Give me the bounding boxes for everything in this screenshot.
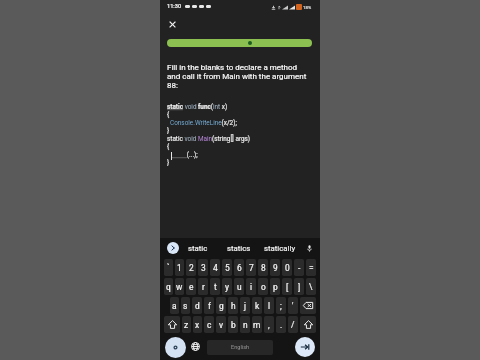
- button[interactable]: 1: [175, 259, 184, 276]
- button[interactable]: ]: [294, 278, 304, 295]
- button[interactable]: u: [234, 278, 244, 295]
- button[interactable]: p: [270, 278, 280, 295]
- button[interactable]: z: [182, 316, 191, 333]
- staticText: ;: [280, 301, 282, 311]
- button[interactable]: 9: [270, 259, 280, 276]
- staticText: 7: [249, 263, 254, 273]
- staticText: static void Main(string[] args): [167, 135, 251, 143]
- staticText: ': [292, 301, 294, 311]
- button[interactable]: Enter: [295, 337, 315, 357]
- button[interactable]: 4: [210, 259, 220, 276]
- button[interactable]: English: [207, 340, 273, 355]
- button[interactable]: Shift: [164, 316, 180, 333]
- staticText: s: [183, 301, 188, 311]
- button[interactable]: ': [288, 297, 298, 314]
- button[interactable]: \: [306, 278, 316, 295]
- button[interactable]: Emoji: [165, 337, 186, 358]
- button[interactable]: m: [252, 316, 262, 333]
- button[interactable]: static: [178, 238, 218, 258]
- staticText: (...);: [171, 151, 198, 159]
- button[interactable]: s: [181, 297, 190, 314]
- staticText: Console.WriteLine(x/2);: [170, 119, 237, 127]
- staticText: static: [188, 244, 208, 253]
- staticText: 0: [285, 263, 290, 273]
- staticText: 6: [237, 263, 242, 273]
- button[interactable]: Change language: [189, 340, 202, 353]
- button[interactable]: v: [216, 316, 226, 333]
- button[interactable]: h: [228, 297, 238, 314]
- button[interactable]: Backspace: [300, 297, 316, 314]
- button[interactable]: -: [294, 259, 304, 276]
- staticText: [: [286, 282, 289, 292]
- button[interactable]: b: [228, 316, 238, 333]
- staticText: 9: [273, 263, 278, 273]
- button[interactable]: d: [192, 297, 202, 314]
- button[interactable]: =: [306, 259, 316, 276]
- staticText: q: [166, 282, 171, 292]
- button[interactable]: t: [210, 278, 220, 295]
- button[interactable]: f: [204, 297, 214, 314]
- button[interactable]: c: [204, 316, 214, 333]
- button[interactable]: q: [164, 278, 173, 295]
- button[interactable]: j: [240, 297, 250, 314]
- button[interactable]: y: [222, 278, 232, 295]
- button[interactable]: 7: [246, 259, 256, 276]
- staticText: statics: [227, 244, 251, 253]
- button[interactable]: `: [164, 259, 173, 276]
- button[interactable]: /: [288, 316, 298, 333]
- button[interactable]: n: [240, 316, 250, 333]
- staticText: p: [273, 282, 278, 292]
- button[interactable]: 6: [234, 259, 244, 276]
- button[interactable]: k: [252, 297, 262, 314]
- button[interactable]: i: [246, 278, 256, 295]
- staticText: v: [219, 320, 224, 330]
- staticText: {: [167, 143, 170, 151]
- staticText: f: [208, 301, 211, 311]
- staticText: .: [280, 320, 283, 330]
- staticText: }: [167, 159, 170, 167]
- button[interactable]: 3: [198, 259, 208, 276]
- button[interactable]: Close: [166, 18, 178, 30]
- button[interactable]: .: [276, 316, 286, 333]
- staticText: w: [176, 282, 183, 292]
- staticText: static void func(int x): [167, 103, 228, 111]
- staticText: 18%: [303, 5, 312, 10]
- button[interactable]: [: [282, 278, 292, 295]
- button[interactable]: e: [186, 278, 196, 295]
- staticText: ]: [298, 282, 301, 292]
- button[interactable]: r: [198, 278, 208, 295]
- staticText: i: [250, 282, 253, 292]
- button[interactable]: Shift: [300, 316, 316, 333]
- staticText: z: [184, 320, 189, 330]
- button[interactable]: Voice input: [305, 244, 314, 253]
- button[interactable]: w: [175, 278, 184, 295]
- staticText: }: [167, 127, 170, 135]
- button[interactable]: ;: [276, 297, 286, 314]
- staticText: d: [195, 301, 200, 311]
- button[interactable]: 2: [186, 259, 196, 276]
- staticText: 11:30: [167, 3, 182, 10]
- staticText: -: [298, 263, 301, 273]
- staticText: 3: [201, 263, 206, 273]
- button[interactable]: statics: [218, 238, 259, 258]
- button[interactable]: ,: [264, 316, 274, 333]
- staticText: `: [167, 263, 170, 273]
- button[interactable]: a: [170, 297, 179, 314]
- button[interactable]: statically: [259, 238, 300, 258]
- staticText: \: [309, 282, 313, 292]
- button[interactable]: o: [258, 278, 268, 295]
- button[interactable]: g: [216, 297, 226, 314]
- button[interactable]: 5: [222, 259, 232, 276]
- button[interactable]: Expand suggestions: [167, 242, 179, 254]
- button[interactable]: l: [264, 297, 274, 314]
- staticText: a: [172, 301, 177, 311]
- button[interactable]: 8: [258, 259, 268, 276]
- staticText: n: [243, 320, 248, 330]
- button[interactable]: 0: [282, 259, 292, 276]
- staticText: x: [195, 320, 200, 330]
- staticText: =: [309, 263, 314, 273]
- button[interactable]: x: [193, 316, 202, 333]
- staticText: English: [231, 344, 250, 351]
- staticText: y: [225, 282, 229, 292]
- staticText: h: [231, 301, 236, 311]
